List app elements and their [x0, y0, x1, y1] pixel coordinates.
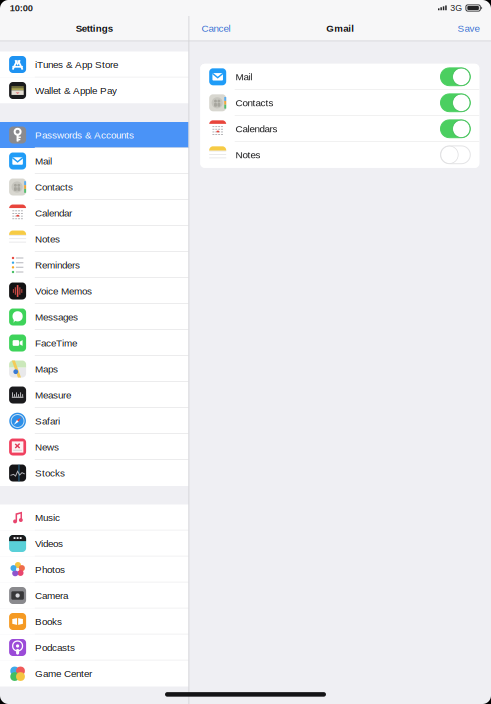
staticText: Messages [35, 311, 78, 322]
staticText: Passwords & Accounts [35, 129, 134, 140]
staticText: Save [457, 23, 479, 34]
button[interactable]: FaceTime [0, 330, 188, 356]
staticText: Videos [35, 538, 63, 549]
button[interactable]: Notes [0, 226, 188, 252]
staticText: Maps [35, 363, 58, 374]
button[interactable]: Measure [0, 382, 188, 408]
staticText: Books [35, 616, 62, 627]
staticText: Cancel [201, 23, 230, 34]
staticText: Notes [35, 233, 60, 244]
staticText: Stocks [35, 467, 65, 478]
button[interactable]: News [0, 434, 188, 460]
button[interactable]: Cancel [189, 18, 238, 39]
button[interactable]: iTunes & App Store [0, 51, 188, 77]
button[interactable]: Game Center [0, 660, 188, 686]
button[interactable]: Safari [0, 408, 188, 434]
button[interactable]: Calendar [0, 200, 188, 226]
staticText: Calendars [235, 123, 277, 134]
staticText: Mail [35, 155, 52, 166]
staticText: Camera [35, 590, 68, 601]
button[interactable]: Maps [0, 356, 188, 382]
button[interactable]: Voice Memos [0, 278, 188, 304]
button[interactable]: Passwords & Accounts [0, 122, 188, 148]
button[interactable]: Videos [0, 530, 188, 556]
staticText: Contacts [35, 181, 73, 192]
button[interactable]: Notes [200, 142, 479, 168]
staticText: Calendar [35, 207, 72, 218]
button[interactable]: Messages [0, 304, 188, 330]
staticText: Safari [35, 415, 60, 426]
staticText: Contacts [235, 97, 273, 108]
button[interactable]: Calendars [200, 116, 479, 142]
staticText: 3G [450, 3, 462, 13]
button[interactable]: Reminders [0, 252, 188, 278]
staticText: Mail [235, 71, 252, 82]
button[interactable]: Wallet & Apple Pay [0, 77, 188, 103]
button[interactable]: Save [449, 18, 491, 39]
button[interactable]: Contacts [200, 90, 479, 116]
staticText: Game Center [35, 668, 92, 679]
button[interactable]: Mail [200, 64, 479, 90]
button[interactable]: Books [0, 608, 188, 634]
button[interactable]: Stocks [0, 460, 188, 486]
button[interactable]: Podcasts [0, 634, 188, 660]
staticText: Gmail [326, 23, 354, 34]
staticText: News [35, 441, 59, 452]
staticText: Notes [235, 149, 260, 160]
button[interactable]: Camera [0, 582, 188, 608]
staticText: Voice Memos [35, 285, 92, 296]
staticText: iTunes & App Store [35, 59, 118, 70]
button[interactable]: Photos [0, 556, 188, 582]
staticText: Wallet & Apple Pay [35, 85, 117, 96]
staticText: Photos [35, 564, 65, 575]
staticText: Settings [76, 23, 113, 34]
staticText: 10:00 [10, 3, 33, 13]
staticText: FaceTime [35, 337, 77, 348]
staticText: Measure [35, 389, 71, 400]
button[interactable]: Contacts [0, 174, 188, 200]
button[interactable]: Mail [0, 148, 188, 174]
staticText: Podcasts [35, 642, 75, 653]
button[interactable]: Music [0, 504, 188, 530]
staticText: Reminders [35, 259, 80, 270]
staticText: Music [35, 512, 60, 523]
